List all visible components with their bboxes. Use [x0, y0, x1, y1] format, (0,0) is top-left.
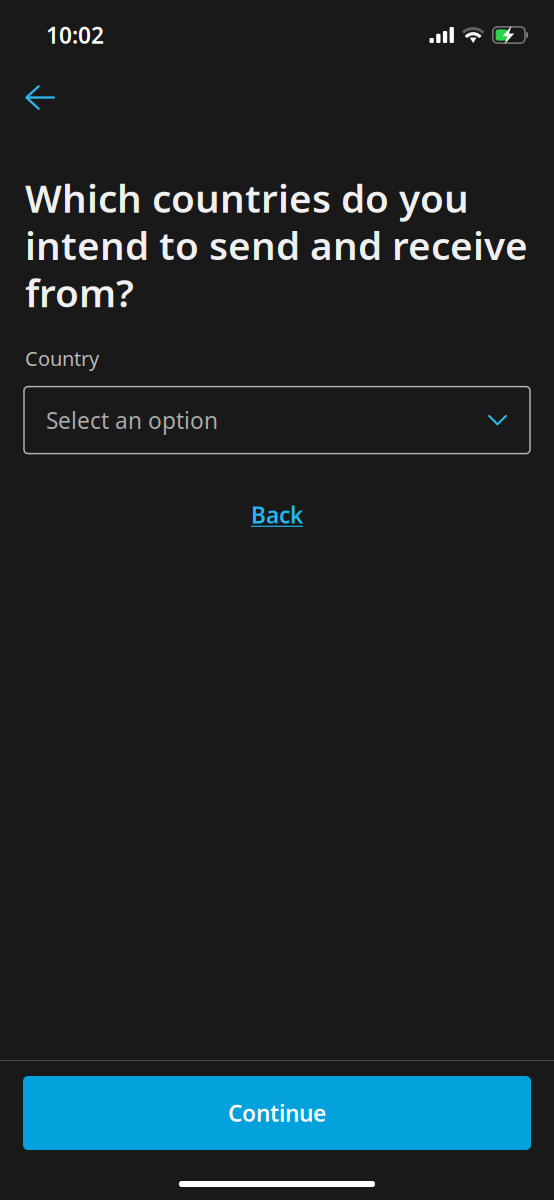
staticText: Select an option — [46, 405, 218, 435]
staticText: Back — [251, 500, 303, 530]
button[interactable]: Select an option — [24, 387, 530, 454]
staticText: Country — [25, 345, 99, 372]
staticText: Continue — [228, 1098, 326, 1128]
button[interactable]: Back — [239, 491, 315, 539]
button[interactable]: Continue — [23, 1076, 531, 1150]
staticText: Which countries do you intend to send an… — [25, 172, 528, 318]
staticText: 10:02 — [46, 20, 104, 50]
button[interactable]: Back — [0, 70, 75, 125]
